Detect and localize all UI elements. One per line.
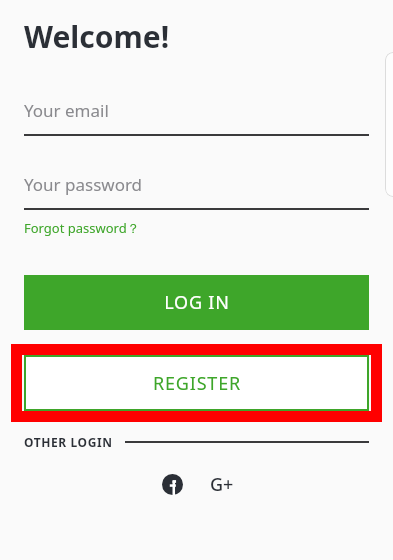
- button[interactable]: REGISTER: [24, 355, 369, 411]
- button[interactable]: Forgot password？: [24, 219, 140, 237]
- staticText: OTHER LOGIN: [24, 434, 113, 450]
- staticText: Your password: [24, 173, 143, 196]
- button[interactable]: Your email: [24, 99, 369, 136]
- staticText: Your email: [24, 99, 109, 122]
- staticText: LOG IN: [164, 290, 230, 315]
- staticText: Forgot password？: [24, 219, 140, 237]
- staticText: REGISTER: [153, 371, 241, 396]
- button[interactable]: Your password: [24, 173, 369, 210]
- button[interactable]: Sign in with Facebook: [156, 468, 188, 500]
- staticText: Welcome!: [24, 16, 170, 57]
- staticText: G+: [210, 472, 234, 497]
- button[interactable]: Sign in with Google Plus: [206, 468, 238, 500]
- button[interactable]: LOG IN: [24, 275, 369, 330]
